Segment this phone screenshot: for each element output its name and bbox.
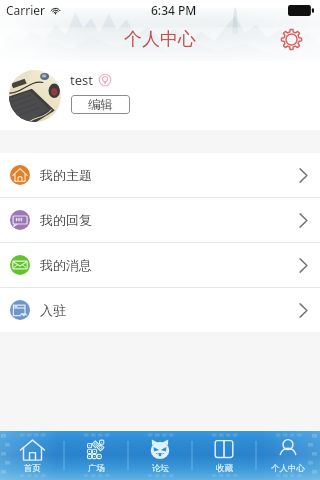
button[interactable]: Settings — [277, 25, 306, 54]
staticText: 广场 — [88, 463, 105, 474]
button[interactable]: 收藏 — [192, 431, 256, 480]
staticText: 收藏 — [216, 463, 233, 474]
button[interactable]: 我的回复 — [0, 198, 320, 242]
button[interactable]: 首页 — [0, 431, 64, 480]
button[interactable]: 论坛 — [128, 431, 192, 480]
staticText: 个人中心 — [271, 463, 305, 474]
staticText: test — [70, 71, 93, 89]
staticText: 首页 — [24, 463, 41, 474]
staticText: 论坛 — [152, 463, 169, 474]
button[interactable]: Avatar — [9, 70, 61, 122]
staticText: Carrier — [6, 2, 46, 18]
staticText: 我的回复 — [40, 212, 92, 228]
button[interactable]: 我的主题 — [0, 153, 320, 197]
staticText: 入驻 — [40, 302, 66, 318]
button[interactable]: 编辑 — [71, 95, 130, 114]
staticText: 我的主题 — [40, 167, 92, 183]
staticText: 我的消息 — [40, 257, 92, 273]
button[interactable]: 广场 — [64, 431, 128, 480]
button[interactable]: 个人中心 — [256, 431, 320, 480]
staticText: 编辑 — [88, 97, 113, 113]
staticText: 个人中心 — [124, 28, 196, 51]
button[interactable]: 入驻 — [0, 288, 320, 332]
button[interactable]: 我的消息 — [0, 243, 320, 287]
staticText: 6:34 PM — [151, 2, 197, 18]
